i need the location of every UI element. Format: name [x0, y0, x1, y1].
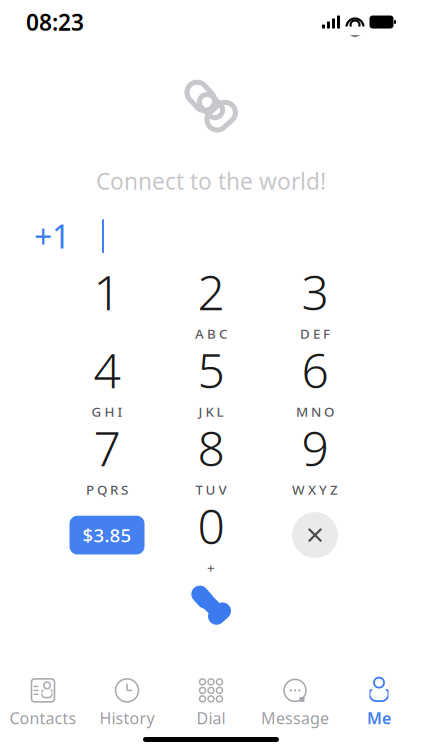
staticText: 9	[301, 416, 328, 480]
staticText: F	[323, 325, 330, 342]
staticText: 7	[93, 416, 120, 480]
staticText: V	[218, 481, 226, 498]
staticText: A	[195, 325, 204, 342]
staticText: K	[205, 403, 213, 420]
button[interactable]: Message	[253, 677, 337, 729]
button[interactable]: 4	[55, 344, 159, 414]
button[interactable]: 1	[55, 266, 159, 336]
staticText: C	[219, 325, 227, 342]
staticText: 08:23	[26, 7, 84, 37]
staticText: P	[86, 481, 94, 498]
staticText: +	[207, 559, 215, 576]
staticText: L	[216, 403, 223, 420]
staticText: Contacts	[9, 707, 76, 729]
staticText: X	[308, 481, 316, 498]
button[interactable]: 6	[263, 344, 367, 414]
staticText: History	[99, 707, 154, 729]
staticText: 1	[93, 260, 120, 324]
staticText: Dial	[196, 707, 225, 729]
staticText: Y	[319, 481, 327, 498]
staticText: D	[300, 325, 310, 342]
staticText: Message	[261, 707, 329, 729]
staticText: 0	[197, 494, 224, 558]
staticText: R	[110, 481, 118, 498]
button[interactable]: 8	[159, 422, 263, 492]
button[interactable]: 7	[55, 422, 159, 492]
staticText: Q	[97, 481, 107, 498]
button[interactable]: 2	[159, 266, 263, 336]
staticText: T	[195, 481, 202, 498]
staticText: H	[104, 403, 114, 420]
button[interactable]: Delete	[263, 500, 367, 570]
button[interactable]: +1	[24, 214, 80, 258]
button[interactable]: $3.85	[55, 500, 159, 570]
button[interactable]: Me	[337, 677, 421, 729]
staticText: M	[296, 403, 308, 420]
button[interactable]: 0	[159, 500, 263, 570]
staticText: 5	[197, 338, 224, 402]
button[interactable]: 5	[159, 344, 263, 414]
button[interactable]: History	[85, 677, 169, 729]
staticText: 4	[93, 338, 120, 402]
staticText: Me	[367, 707, 391, 729]
staticText: $3.85	[82, 523, 131, 547]
staticText: 2	[197, 260, 224, 324]
button[interactable]: Dial	[169, 677, 253, 729]
staticText: I	[117, 403, 122, 420]
staticText: E	[313, 325, 320, 342]
staticText: N	[311, 403, 321, 420]
staticText: Z	[330, 481, 338, 498]
button[interactable]: 9	[263, 422, 367, 492]
staticText: O	[324, 403, 334, 420]
staticText: G	[91, 403, 101, 420]
staticText: 8	[197, 416, 224, 480]
staticText: J	[198, 403, 202, 420]
staticText: 6	[301, 338, 328, 402]
staticText: +1	[34, 215, 70, 257]
staticText: U	[205, 481, 215, 498]
button[interactable]: 3	[263, 266, 367, 336]
staticText: S	[121, 481, 128, 498]
staticText: B	[207, 325, 216, 342]
staticText: Connect to the world!	[96, 166, 326, 196]
button[interactable]: Contacts	[1, 677, 85, 729]
staticText: 3	[301, 260, 328, 324]
staticText: W	[292, 481, 305, 498]
button[interactable]: Call	[166, 574, 256, 636]
